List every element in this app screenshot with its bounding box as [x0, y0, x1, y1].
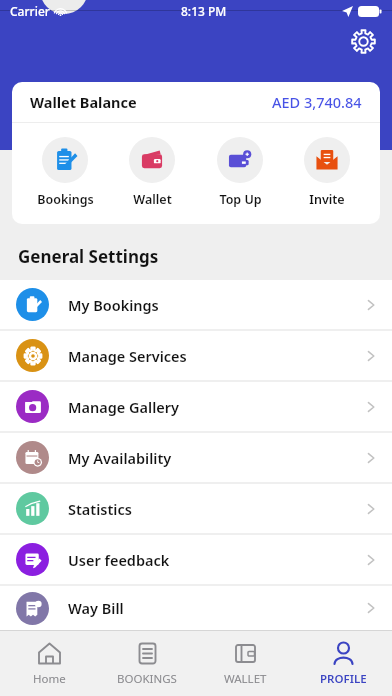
staticText: Invite	[309, 191, 345, 208]
button[interactable]: Way Bill	[0, 586, 392, 630]
staticText: Carrier	[10, 3, 50, 19]
staticText: AED 3,740.84	[272, 92, 362, 112]
button[interactable]: Top Up	[205, 135, 275, 210]
button[interactable]: Manage Services	[0, 331, 392, 380]
button[interactable]: User feedback	[0, 535, 392, 584]
staticText: My Availability	[68, 448, 172, 468]
staticText: My Bookings	[68, 295, 159, 315]
button[interactable]: My Availability	[0, 433, 392, 482]
staticText: Bookings	[37, 191, 94, 208]
button[interactable]: WALLET	[196, 631, 294, 696]
staticText: Way Bill	[68, 598, 124, 618]
button[interactable]: My Bookings	[0, 280, 392, 329]
staticText: PROFILE	[320, 671, 367, 687]
staticText: Top Up	[219, 191, 262, 208]
staticText: BOOKINGS	[117, 671, 177, 687]
button[interactable]: Wallet	[117, 135, 187, 210]
button[interactable]: Bookings	[30, 135, 100, 210]
button[interactable]: PROFILE	[294, 631, 392, 696]
staticText: Home	[33, 671, 66, 687]
staticText: User feedback	[68, 550, 170, 570]
button[interactable]: Statistics	[0, 484, 392, 533]
button[interactable]: Manage Gallery	[0, 382, 392, 431]
staticText: Statistics	[68, 499, 132, 519]
button[interactable]: Invite	[292, 135, 362, 210]
staticText: Manage Gallery	[68, 397, 179, 417]
button[interactable]: Profile photo	[40, 0, 88, 14]
staticText: 8:13 PM	[181, 3, 227, 19]
staticText: Manage Services	[68, 346, 187, 366]
staticText: WALLET	[224, 671, 267, 687]
button[interactable]: Settings	[346, 24, 380, 58]
button[interactable]: BOOKINGS	[98, 631, 196, 696]
staticText: General Settings	[18, 245, 159, 268]
button[interactable]: Home	[0, 631, 98, 696]
staticText: Wallet	[133, 191, 172, 208]
staticText: Wallet Balance	[30, 92, 137, 112]
